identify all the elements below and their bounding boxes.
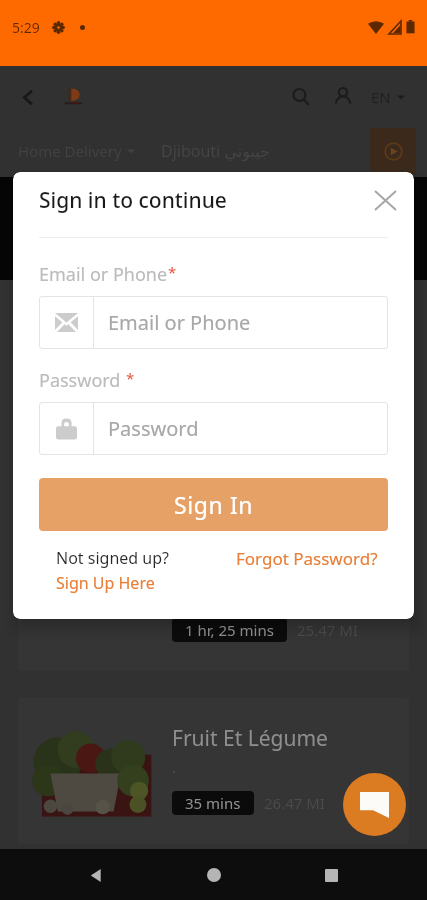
staticText: Password <box>39 368 121 393</box>
button[interactable]: Chat support <box>343 773 406 836</box>
staticText: Fresh Market <box>172 551 302 580</box>
button[interactable]: Back <box>74 853 118 897</box>
button[interactable]: Fruit Et Légume <box>18 698 409 844</box>
staticText: * <box>168 262 177 282</box>
button[interactable]: Home <box>192 853 236 897</box>
button[interactable]: Sign Up Here <box>56 572 155 594</box>
staticText: * <box>126 368 135 388</box>
button[interactable]: Back <box>10 79 46 115</box>
staticText: Password <box>108 415 199 442</box>
staticText: Sign In <box>174 489 254 520</box>
button[interactable]: Close <box>368 183 402 217</box>
staticText: Email or Phone <box>39 262 168 287</box>
button[interactable]: Fresh Market <box>18 525 409 671</box>
button[interactable]: Account <box>325 79 361 115</box>
staticText: Sign Up Here <box>56 572 155 594</box>
button[interactable]: Email or Phone <box>39 296 388 349</box>
staticText: Djibouti جيبوتي <box>161 140 271 162</box>
button[interactable]: Promotion banner <box>0 177 427 280</box>
button[interactable]: Sign In <box>39 478 388 531</box>
staticText: 5:29 <box>12 18 40 37</box>
button[interactable]: Search <box>283 79 319 115</box>
button[interactable]: Use my location <box>370 128 416 174</box>
staticText: 26.47 MI <box>264 793 325 813</box>
button[interactable]: Password <box>39 402 388 455</box>
staticText: 1 hr, 25 mins <box>185 620 274 640</box>
staticText: 25.47 MI <box>297 620 358 640</box>
staticText: Not signed up? <box>56 547 169 569</box>
button[interactable]: EN <box>367 81 409 113</box>
button[interactable]: Home Delivery <box>18 141 135 161</box>
staticText: Forgot Password? <box>236 547 378 570</box>
button[interactable]: Recent apps <box>309 853 353 897</box>
staticText: · <box>172 761 177 781</box>
staticText: Email or Phone <box>108 309 251 336</box>
staticText: EN <box>371 87 391 107</box>
button[interactable]: Forgot Password? <box>236 547 378 570</box>
staticText: Sign in to continue <box>39 186 227 215</box>
staticText: 35 mins <box>185 793 241 813</box>
staticText: Fruit Et Légume <box>172 724 328 753</box>
staticText: Home Delivery <box>18 141 122 161</box>
